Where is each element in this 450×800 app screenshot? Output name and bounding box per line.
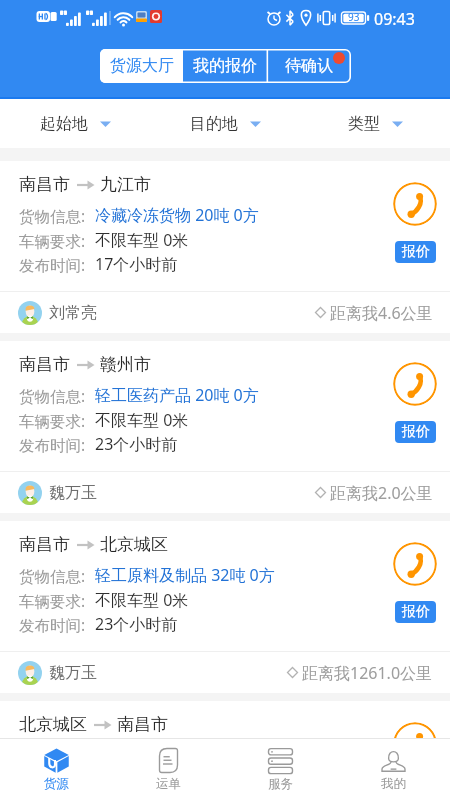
button[interactable]: 北京城区 (0, 701, 450, 800)
staticText: 车辆要求: (19, 230, 86, 251)
staticText: 不限车型 0米 (95, 229, 189, 251)
button[interactable]: 目的地 (150, 99, 300, 148)
staticText: 车辆要求: (19, 590, 86, 611)
staticText: 货物信息: (19, 745, 86, 766)
staticText: 车辆要求: (19, 770, 86, 791)
staticText: 23个小时前 (95, 433, 178, 455)
staticText: 货源大厅 (110, 56, 174, 76)
staticText: 赣州市 (100, 354, 151, 375)
staticText: 不限车型 0米 (95, 589, 189, 611)
staticText: 发布时间: (19, 254, 86, 275)
button[interactable]: 运单 (112, 739, 224, 800)
button[interactable]: 拨打电话 (393, 542, 437, 586)
staticText: 距离我1261.0公里 (302, 769, 433, 791)
staticText: 报价 (402, 243, 430, 261)
staticText: 09:43 (374, 8, 415, 30)
button[interactable]: 南昌市 (0, 341, 450, 513)
staticText: 南昌市 (19, 354, 70, 375)
staticText: 魏万玉 (49, 770, 97, 790)
staticText: 魏万玉 (49, 483, 97, 503)
button[interactable]: 拨打电话 (393, 362, 437, 406)
staticText: 运单 (156, 776, 181, 792)
staticText: 南昌市 (19, 174, 70, 195)
staticText: 南昌市 (19, 534, 70, 555)
staticText: 刘常亮 (49, 303, 97, 323)
staticText: 轻工原料及制品 32吨 0方 (95, 564, 275, 586)
button[interactable]: 报价 (395, 241, 436, 263)
button[interactable]: 类型 (300, 99, 450, 148)
button[interactable]: 拨打电话 (393, 182, 437, 226)
staticText: 93 (348, 10, 360, 24)
staticText: 报价 (402, 603, 430, 621)
staticText: 距离我2.0公里 (330, 482, 433, 504)
staticText: 待确认 (285, 56, 333, 76)
button[interactable]: 待确认 (267, 49, 351, 83)
staticText: 距离我4.6公里 (330, 302, 433, 324)
button[interactable]: 南昌市 (0, 521, 450, 693)
button[interactable]: 报价 (395, 781, 436, 800)
staticText: 我的 (381, 776, 406, 792)
staticText: 轻工医药产品 20吨 0方 (95, 384, 259, 406)
staticText: 距离我1261.0公里 (302, 662, 433, 684)
staticText: 货物信息: (19, 205, 86, 226)
staticText: 货源 (44, 776, 69, 792)
staticText: 南昌市 (117, 714, 168, 735)
staticText: 类型 (348, 114, 380, 134)
staticText: 发布时间: (19, 614, 86, 635)
button[interactable]: 报价 (395, 421, 436, 443)
staticText: 冷藏冷冻货物 20吨 0方 (95, 204, 259, 226)
staticText: 不限车型 0米 (95, 409, 189, 431)
staticText: 九江市 (100, 174, 151, 195)
staticText: 货物信息: (19, 565, 86, 586)
staticText: 23个小时前 (95, 613, 178, 635)
staticText: 17个小时前 (95, 253, 178, 275)
staticText: 目的地 (190, 114, 238, 134)
button[interactable]: 起始地 (0, 99, 150, 148)
staticText: 北京城区 (100, 534, 168, 555)
button[interactable]: 货源大厅 (100, 49, 183, 83)
staticText: 我的报价 (193, 56, 257, 76)
button[interactable]: 我的报价 (183, 49, 267, 83)
staticText: 发布时间: (19, 434, 86, 455)
staticText: 服务 (268, 776, 293, 792)
staticText: 魏万玉 (49, 663, 97, 683)
staticText: 不限车型 0米 (95, 769, 189, 791)
staticText: 货物信息: (19, 385, 86, 406)
staticText: 北京城区 (19, 714, 87, 735)
button[interactable]: 南昌市 (0, 161, 450, 333)
button[interactable]: 我的 (337, 739, 450, 800)
button[interactable]: 货源 (0, 739, 112, 800)
staticText: 车辆要求: (19, 410, 86, 431)
staticText: 报价 (402, 423, 430, 441)
staticText: 起始地 (40, 114, 88, 134)
button[interactable]: 拨打电话 (393, 722, 437, 766)
staticText: 轻工原料及制品 32吨 0方 (95, 744, 275, 766)
button[interactable]: 服务 (224, 739, 337, 800)
button[interactable]: 报价 (395, 601, 436, 623)
staticText: 报价 (402, 783, 430, 800)
